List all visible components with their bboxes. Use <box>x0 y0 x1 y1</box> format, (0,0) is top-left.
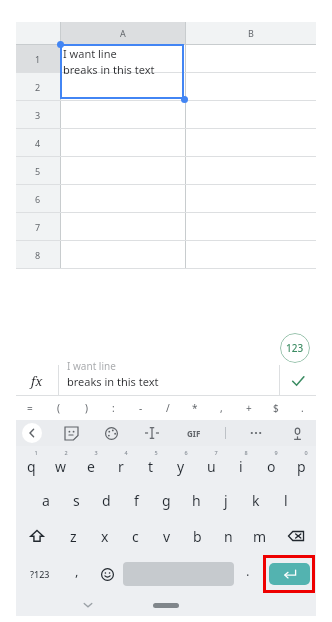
staticText: j <box>224 491 228 510</box>
button[interactable]: + <box>235 396 262 420</box>
staticText: , <box>220 401 223 415</box>
button[interactable]: b <box>182 518 213 554</box>
staticText: - <box>139 401 143 415</box>
staticText: 123 <box>286 341 304 355</box>
button[interactable]: c <box>120 518 151 554</box>
button[interactable]: A <box>61 22 185 44</box>
button[interactable]: Stickers <box>60 422 82 444</box>
button[interactable]: Emoji <box>91 554 123 594</box>
button[interactable]: B <box>186 22 316 44</box>
button[interactable]: Themes <box>100 422 122 444</box>
button[interactable]: 3 <box>76 446 106 482</box>
button[interactable] <box>153 603 179 608</box>
staticText: 4 <box>35 137 41 149</box>
button[interactable]: , <box>63 554 91 594</box>
button[interactable]: , <box>208 396 235 420</box>
button[interactable]: x <box>89 518 120 554</box>
button[interactable] <box>61 73 185 100</box>
button[interactable] <box>186 73 316 100</box>
staticText: w <box>55 457 67 476</box>
button[interactable]: 4 <box>106 446 136 482</box>
button[interactable]: 8 <box>226 446 256 482</box>
button[interactable]: ( <box>44 396 72 420</box>
button[interactable]: 5 <box>16 157 60 184</box>
staticText: = <box>27 401 33 415</box>
button[interactable]: Backspace <box>275 518 316 554</box>
button[interactable]: fx <box>16 365 58 396</box>
staticText: y <box>177 457 185 476</box>
button[interactable]: f <box>121 482 151 518</box>
button[interactable]: 6 <box>16 185 60 212</box>
button[interactable]: v <box>151 518 182 554</box>
button[interactable]: More <box>245 422 267 444</box>
button[interactable]: 2 <box>46 446 76 482</box>
button[interactable]: 7 <box>196 446 226 482</box>
button[interactable]: I want line <box>59 365 279 396</box>
button[interactable] <box>61 101 185 128</box>
button[interactable]: n <box>213 518 244 554</box>
button[interactable]: 5 <box>136 446 166 482</box>
button[interactable]: 8 <box>16 241 60 268</box>
button[interactable]: 2 <box>16 73 60 100</box>
button[interactable]: ?123 <box>16 554 63 594</box>
button[interactable]: g <box>151 482 181 518</box>
button[interactable]: 0 <box>286 446 316 482</box>
button[interactable]: 1 <box>16 446 46 482</box>
staticText: 8 <box>244 449 248 456</box>
button[interactable]: 123 <box>280 333 310 363</box>
button[interactable]: a <box>31 482 61 518</box>
staticText: I want line <box>67 359 116 373</box>
button[interactable]: 1 <box>16 45 60 72</box>
button[interactable] <box>186 101 316 128</box>
button[interactable]: m <box>244 518 275 554</box>
button[interactable]: GIF <box>182 420 206 446</box>
button[interactable] <box>16 22 60 44</box>
button[interactable]: Shift <box>16 518 58 554</box>
button[interactable]: 4 <box>16 129 60 156</box>
button[interactable]: k <box>241 482 271 518</box>
button[interactable]: Hide keyboard <box>78 595 98 615</box>
button[interactable]: ) <box>72 396 100 420</box>
button[interactable]: Voice input <box>286 422 308 444</box>
button[interactable] <box>61 45 185 72</box>
button[interactable]: : <box>100 396 127 420</box>
staticText: n <box>224 527 233 546</box>
button[interactable]: . <box>234 554 262 594</box>
button[interactable]: $ <box>262 396 289 420</box>
button[interactable]: 6 <box>166 446 196 482</box>
button[interactable]: j <box>211 482 241 518</box>
staticText: z <box>70 527 77 546</box>
button[interactable]: d <box>91 482 121 518</box>
button[interactable]: / <box>154 396 181 420</box>
button[interactable]: h <box>181 482 211 518</box>
button[interactable]: z <box>58 518 89 554</box>
staticText: t <box>148 457 154 476</box>
staticText: 3 <box>35 109 41 121</box>
button[interactable]: l <box>271 482 301 518</box>
button[interactable]: 3 <box>16 101 60 128</box>
button[interactable]: Enter <box>269 563 310 585</box>
button[interactable]: = <box>16 396 44 420</box>
button[interactable]: 9 <box>256 446 286 482</box>
button[interactable]: s <box>61 482 91 518</box>
button[interactable]: Text editing <box>141 422 163 444</box>
button[interactable]: Back <box>22 423 42 443</box>
button[interactable]: . <box>289 396 316 420</box>
button[interactable]: Accept <box>280 365 316 396</box>
button[interactable]: * <box>181 396 208 420</box>
button[interactable]: 7 <box>16 213 60 240</box>
button[interactable]: - <box>127 396 154 420</box>
staticText: 5 <box>154 449 158 456</box>
